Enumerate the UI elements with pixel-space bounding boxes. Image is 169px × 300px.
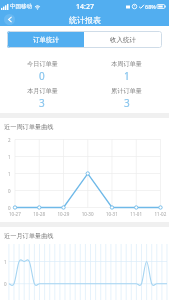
button[interactable]: 累计订单量 [84, 87, 169, 110]
staticText: 1 [124, 69, 130, 83]
staticText: 收入统计 [110, 36, 136, 44]
staticText: 近一月订单量曲线 [4, 232, 54, 240]
staticText: 68% [145, 3, 156, 10]
staticText: 订单统计 [33, 36, 59, 44]
staticText: 统计报表 [69, 15, 101, 25]
staticText: 近一周订单量曲线 [4, 123, 54, 131]
button[interactable]: 订单统计 [7, 31, 84, 48]
staticText: 累计订单量 [111, 87, 142, 95]
button[interactable]: 收入统计 [84, 31, 162, 48]
staticText: 本月订单量 [27, 87, 58, 95]
staticText: 中国移动 [10, 3, 32, 10]
staticText: 今日订单量 [27, 60, 58, 68]
button[interactable]: 今日订单量 [0, 60, 84, 83]
button[interactable]: 本周订单量 [84, 60, 169, 83]
staticText: 0 [39, 69, 45, 83]
button[interactable]: 本月订单量 [0, 87, 84, 110]
staticText: 14:27 [76, 2, 94, 12]
staticText: 3 [124, 96, 130, 110]
staticText: 本周订单量 [111, 60, 142, 68]
button[interactable]: Back [4, 14, 15, 25]
staticText: 3 [39, 96, 45, 110]
